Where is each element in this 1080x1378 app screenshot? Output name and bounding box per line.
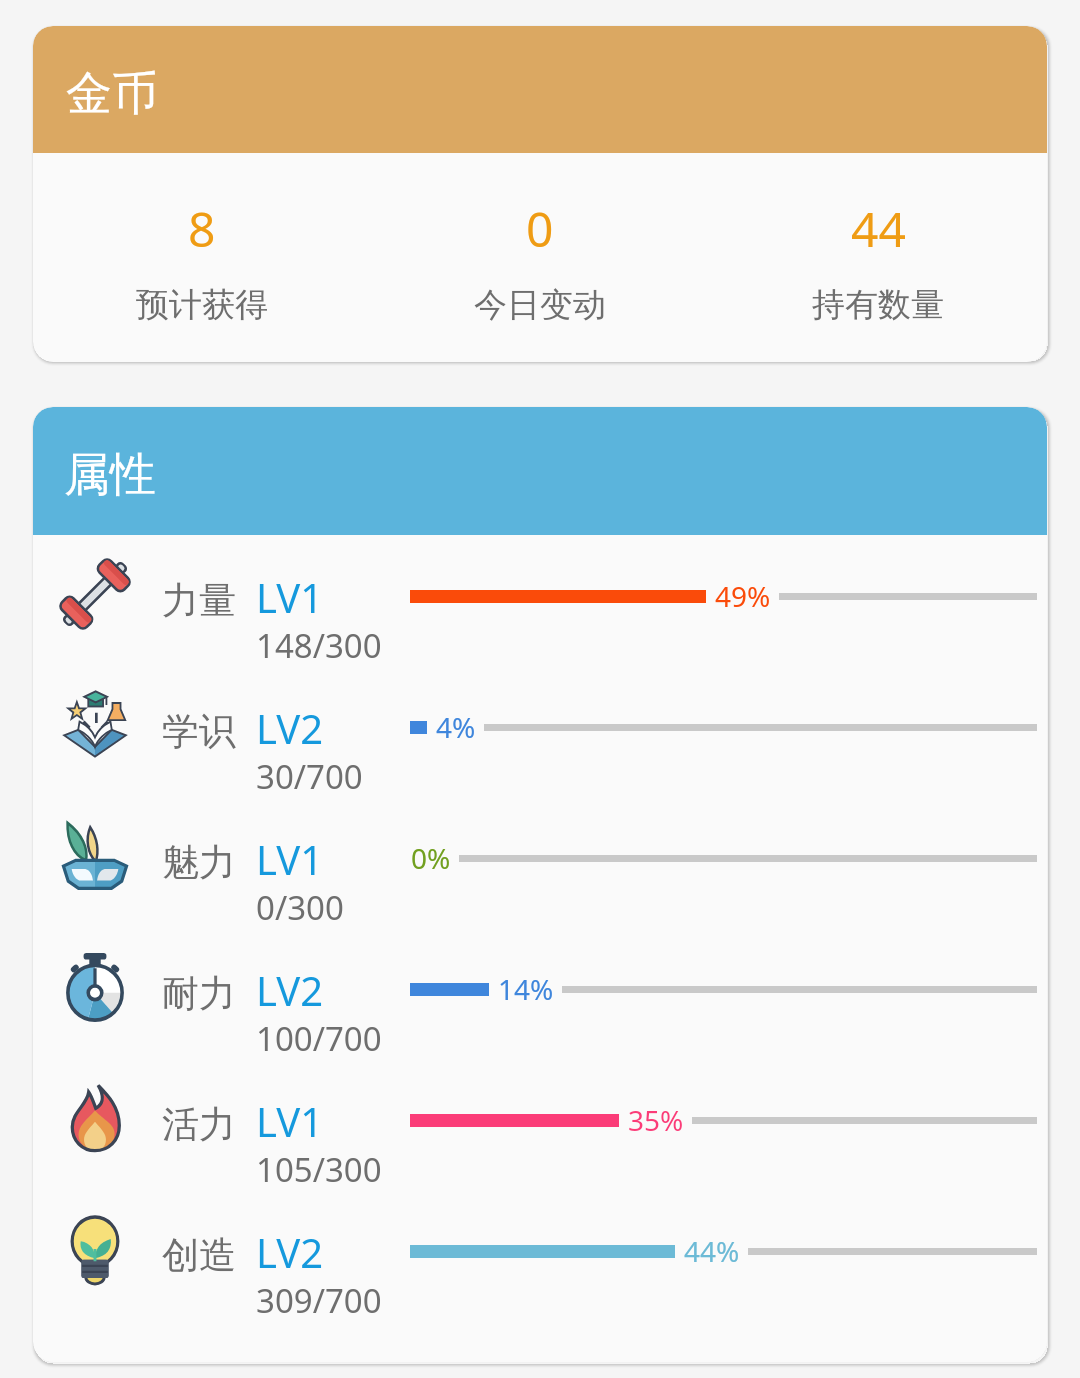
button[interactable]: 金币 xyxy=(33,26,1047,362)
staticText: 100/700 xyxy=(256,1016,382,1061)
button[interactable]: 活力 xyxy=(33,1059,1047,1190)
staticText: 49% xyxy=(715,577,771,615)
staticText: 8 xyxy=(188,196,216,261)
staticText: 持有数量 xyxy=(812,284,944,326)
staticText: 魅力 xyxy=(162,839,236,886)
other: 力量 xyxy=(60,559,130,629)
staticText: 0 xyxy=(526,196,554,261)
button[interactable]: 创造 xyxy=(33,1190,1047,1321)
staticText: 44 xyxy=(851,196,906,261)
button[interactable]: 魅力 xyxy=(33,797,1047,928)
staticText: 105/300 xyxy=(256,1147,382,1192)
button[interactable]: 学识 xyxy=(33,666,1047,797)
staticText: LV2 xyxy=(256,1225,324,1279)
staticText: 预计获得 xyxy=(136,284,268,326)
staticText: 309/700 xyxy=(256,1278,382,1323)
staticText: 0/300 xyxy=(256,885,344,930)
staticText: 0% xyxy=(411,839,451,877)
staticText: 今日变动 xyxy=(474,284,606,326)
staticText: 30/700 xyxy=(256,754,363,799)
staticText: 14% xyxy=(498,970,554,1008)
staticText: LV2 xyxy=(256,963,324,1017)
staticText: LV2 xyxy=(256,701,324,755)
button[interactable]: 耐力 xyxy=(33,928,1047,1059)
staticText: 耐力 xyxy=(162,970,236,1017)
staticText: 创造 xyxy=(162,1232,236,1279)
staticText: 44% xyxy=(684,1232,740,1270)
staticText: 活力 xyxy=(162,1101,236,1148)
staticText: 35% xyxy=(628,1101,684,1139)
staticText: 金币 xyxy=(66,65,158,123)
staticText: 4% xyxy=(436,708,476,746)
other: 学识 xyxy=(60,690,130,760)
staticText: LV1 xyxy=(256,1094,324,1148)
staticText: LV1 xyxy=(256,570,324,624)
staticText: 力量 xyxy=(162,577,236,624)
staticText: 148/300 xyxy=(256,623,382,668)
staticText: 学识 xyxy=(162,708,236,755)
button[interactable]: 力量 xyxy=(33,535,1047,666)
staticText: LV1 xyxy=(256,832,324,886)
other: 创造 xyxy=(60,1214,130,1284)
other: 魅力 xyxy=(60,821,130,891)
staticText: 属性 xyxy=(64,446,156,504)
other: 活力 xyxy=(60,1083,130,1153)
other: 耐力 xyxy=(60,952,130,1022)
